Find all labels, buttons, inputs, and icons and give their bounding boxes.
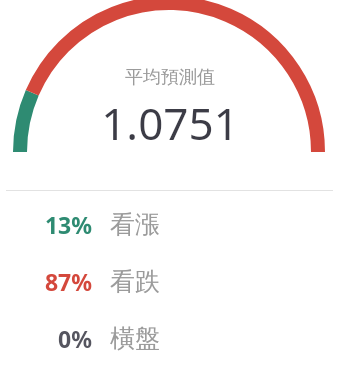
staticText: 13% — [44, 209, 92, 240]
button[interactable]: 87% — [0, 266, 339, 297]
staticText: 看漲 — [110, 209, 160, 240]
button[interactable]: 13% — [0, 209, 339, 240]
button[interactable]: 0% — [0, 323, 339, 354]
staticText: 橫盤 — [110, 323, 160, 354]
button[interactable]: Average forecast gauge — [0, 0, 339, 190]
staticText: 87% — [44, 266, 92, 297]
staticText: 平均預測值 — [125, 66, 215, 89]
staticText: 0% — [58, 323, 92, 354]
staticText: 看跌 — [110, 266, 160, 297]
staticText: 1.0751 — [101, 93, 239, 153]
